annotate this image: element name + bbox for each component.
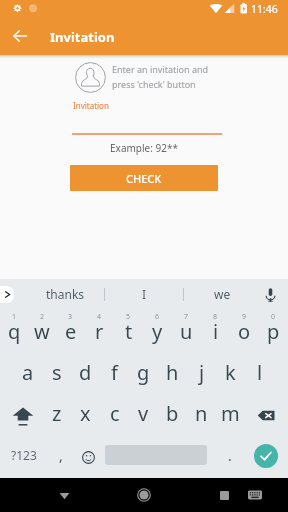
- staticText: h: [166, 359, 179, 386]
- button[interactable]: s: [42, 352, 71, 394]
- button[interactable]: Back: [47, 478, 81, 512]
- button[interactable]: Enter: [246, 436, 288, 478]
- staticText: m: [221, 400, 240, 427]
- staticText: 8: [213, 312, 218, 322]
- staticText: q: [8, 318, 21, 345]
- button[interactable]: z: [43, 394, 71, 436]
- staticText: .: [228, 446, 232, 465]
- button[interactable]: Emoji: [74, 436, 102, 478]
- staticText: Enter an invitation and: [112, 63, 209, 75]
- staticText: t: [125, 318, 133, 345]
- staticText: 1: [12, 312, 17, 322]
- staticText: e: [65, 318, 77, 345]
- button[interactable]: ,: [48, 436, 74, 478]
- staticText: p: [267, 318, 280, 345]
- button[interactable]: 1: [0, 310, 28, 352]
- button[interactable]: CHECK: [70, 165, 218, 191]
- button[interactable]: 6: [143, 310, 172, 352]
- staticText: l: [257, 359, 263, 386]
- button[interactable]: Switch keyboard: [238, 478, 272, 512]
- button[interactable]: thanks: [27, 279, 103, 310]
- button[interactable]: Navigate up: [2, 18, 38, 54]
- button[interactable]: I: [106, 279, 182, 310]
- staticText: r: [95, 318, 104, 345]
- staticText: g: [137, 359, 150, 386]
- button[interactable]: ?123: [0, 436, 48, 478]
- button[interactable]: .: [214, 436, 246, 478]
- button[interactable]: j: [187, 352, 216, 394]
- button[interactable]: Voice input: [252, 279, 288, 310]
- button[interactable]: a: [14, 352, 42, 394]
- staticText: 0: [271, 312, 276, 322]
- button[interactable]: Recent apps: [207, 478, 241, 512]
- button[interactable]: d: [71, 352, 100, 394]
- staticText: b: [166, 400, 179, 427]
- staticText: Invitation: [73, 100, 109, 111]
- button[interactable]: n: [187, 394, 216, 436]
- staticText: v: [138, 400, 149, 427]
- staticText: a: [22, 359, 34, 386]
- button[interactable]: 5: [114, 310, 143, 352]
- button[interactable]: f: [100, 352, 129, 394]
- staticText: y: [152, 318, 163, 345]
- staticText: 6: [155, 312, 160, 322]
- staticText: 4: [97, 312, 102, 322]
- staticText: Example: 92**: [0, 141, 288, 155]
- button[interactable]: More suggestions: [0, 286, 14, 303]
- staticText: x: [80, 400, 91, 427]
- button[interactable]: Backspace: [245, 394, 288, 436]
- staticText: ?123: [11, 447, 37, 463]
- staticText: d: [79, 359, 92, 386]
- button[interactable]: l: [245, 352, 274, 394]
- button[interactable]: h: [158, 352, 187, 394]
- staticText: 3: [68, 312, 73, 322]
- button[interactable]: 8: [201, 310, 230, 352]
- button[interactable]: 7: [172, 310, 201, 352]
- staticText: w: [34, 318, 50, 345]
- staticText: 5: [126, 312, 131, 322]
- button[interactable]: Shift: [0, 394, 43, 436]
- staticText: CHECK: [126, 171, 162, 186]
- staticText: u: [180, 318, 193, 345]
- staticText: thanks: [46, 286, 85, 302]
- staticText: i: [213, 318, 219, 345]
- staticText: 9: [242, 312, 247, 322]
- staticText: f: [111, 359, 118, 386]
- button[interactable]: 4: [85, 310, 114, 352]
- staticText: I: [142, 286, 147, 302]
- button[interactable]: 0: [259, 310, 288, 352]
- staticText: press 'check' button: [112, 78, 196, 90]
- staticText: o: [238, 318, 251, 345]
- staticText: j: [199, 359, 205, 386]
- button[interactable]: k: [216, 352, 245, 394]
- button[interactable]: 9: [230, 310, 259, 352]
- staticText: ,: [59, 446, 63, 465]
- button[interactable]: x: [71, 394, 100, 436]
- button[interactable]: b: [158, 394, 187, 436]
- staticText: c: [110, 400, 120, 427]
- button[interactable]: Home: [127, 478, 161, 512]
- staticText: 2: [40, 312, 45, 322]
- staticText: n: [195, 400, 208, 427]
- staticText: k: [225, 359, 236, 386]
- staticText: 11:46: [251, 2, 278, 16]
- staticText: Invitation: [50, 28, 115, 46]
- staticText: s: [52, 359, 62, 386]
- staticText: we: [214, 286, 231, 302]
- button[interactable]: we: [184, 279, 260, 310]
- button[interactable]: v: [129, 394, 158, 436]
- button[interactable]: c: [100, 394, 129, 436]
- button[interactable]: m: [216, 394, 245, 436]
- staticText: 7: [184, 312, 189, 322]
- staticText: z: [52, 400, 62, 427]
- button[interactable]: 2: [28, 310, 56, 352]
- button[interactable]: g: [129, 352, 158, 394]
- button[interactable]: 3: [56, 310, 85, 352]
